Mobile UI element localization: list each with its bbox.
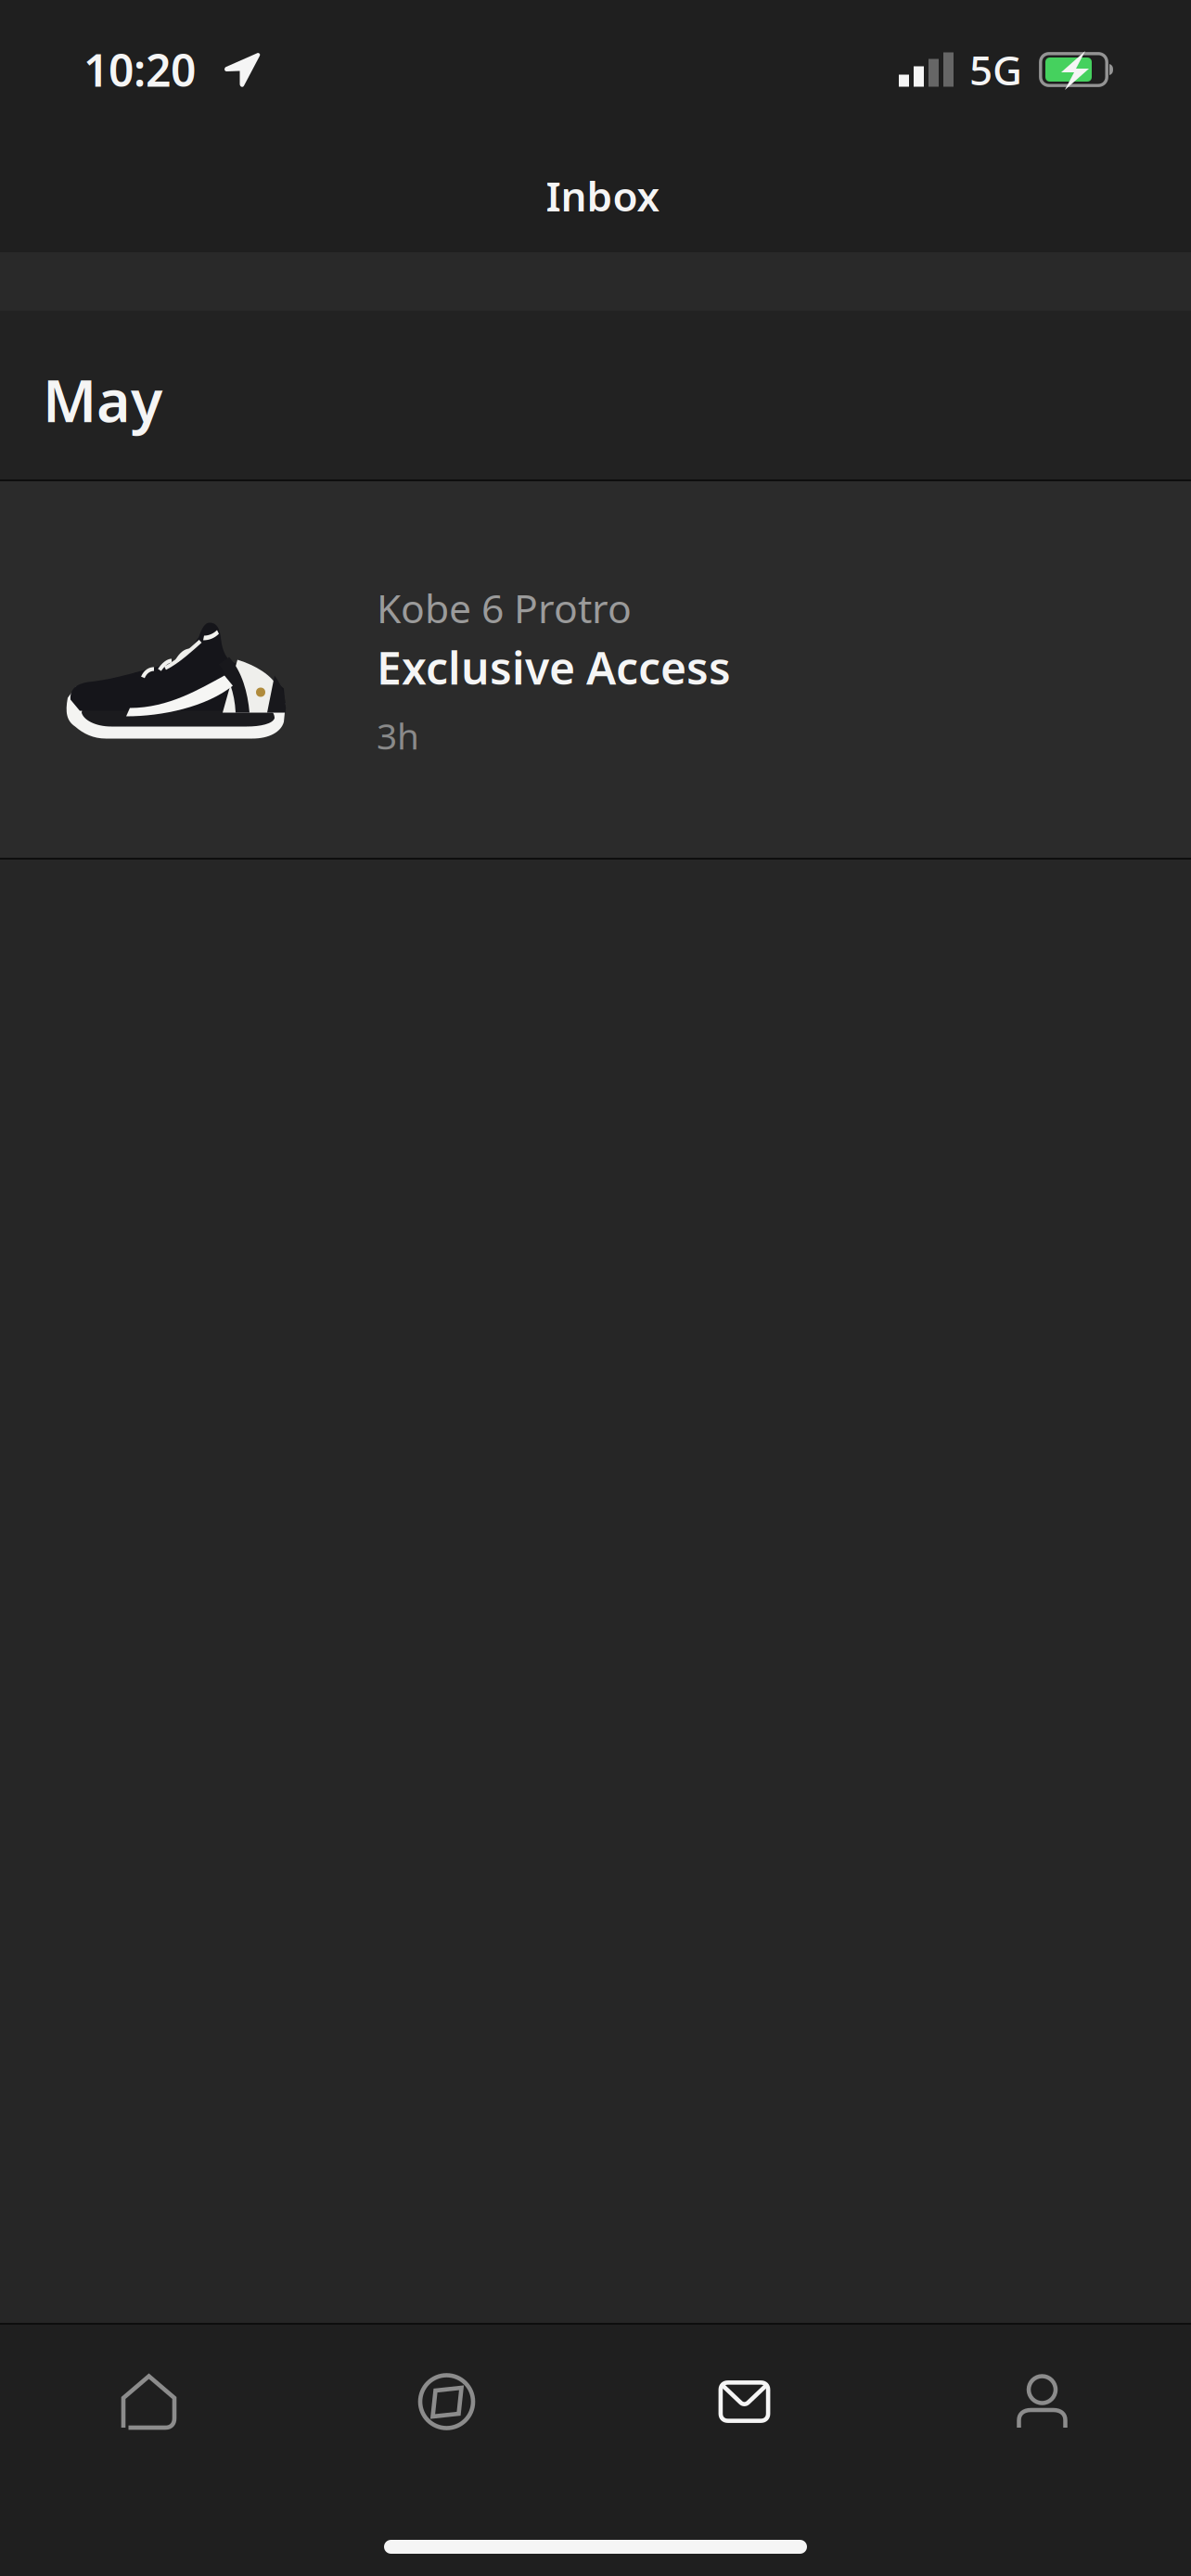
button[interactable]: Profile [893, 2325, 1191, 2479]
staticText: May [43, 361, 162, 438]
staticText: Exclusive Access [377, 638, 731, 697]
button[interactable]: Home [0, 2325, 298, 2479]
staticText: 3h [377, 712, 419, 759]
button[interactable]: Discover [298, 2325, 595, 2479]
staticText: Kobe 6 Protro [377, 582, 632, 634]
staticText: 5G [969, 42, 1022, 97]
button[interactable]: Inbox [595, 2325, 893, 2479]
staticText: 10:20 [83, 40, 196, 99]
staticText: Inbox [546, 169, 660, 223]
button[interactable]: Kobe 6 Protro [0, 481, 1191, 858]
